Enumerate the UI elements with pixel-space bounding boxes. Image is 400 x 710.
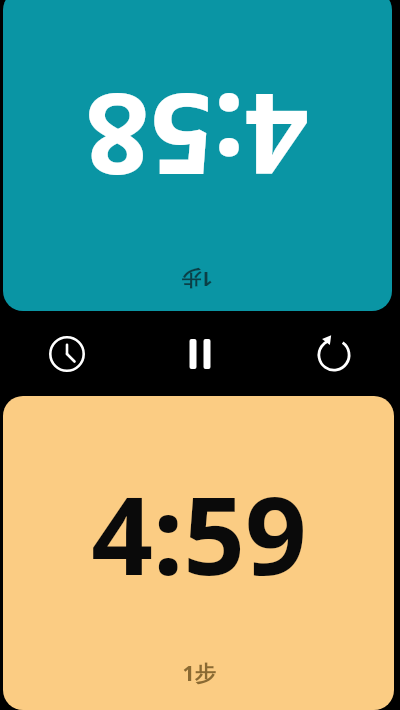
- button[interactable]: Add time: [0, 311, 133, 396]
- staticText: 4:59: [91, 460, 307, 607]
- button[interactable]: Pause: [133, 311, 267, 396]
- button[interactable]: 4:59: [3, 396, 394, 710]
- staticText: 4:58: [85, 61, 309, 214]
- button[interactable]: 1步: [3, 0, 392, 311]
- staticText: 1步: [182, 659, 216, 688]
- button[interactable]: Restart: [267, 311, 400, 396]
- staticText: 1步: [181, 266, 213, 293]
